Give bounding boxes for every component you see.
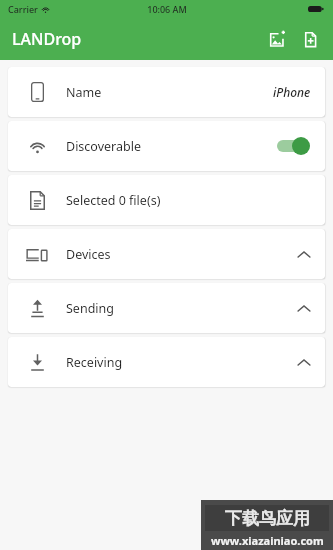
staticText: Name — [66, 84, 102, 101]
button[interactable]: Discoverable — [8, 121, 325, 171]
staticText: www.xiazainiao.com — [211, 533, 324, 548]
button[interactable]: Add file — [293, 22, 327, 56]
staticText: Receiving — [66, 354, 123, 371]
staticText: Discoverable — [66, 138, 141, 155]
staticText: Selected 0 file(s) — [66, 192, 161, 209]
button[interactable]: Receiving — [8, 337, 325, 387]
staticText: Sending — [66, 300, 114, 317]
button[interactable]: Name — [8, 67, 325, 117]
staticText: Carrier — [8, 3, 38, 15]
button[interactable]: Discoverable toggle, on — [275, 136, 311, 156]
button[interactable]: Selected 0 file(s) — [8, 175, 325, 225]
button[interactable]: Add image — [259, 22, 293, 56]
button[interactable]: Devices — [8, 229, 325, 279]
staticText: LANDrop — [12, 28, 82, 50]
staticText: 下载鸟应用 — [225, 508, 310, 529]
staticText: Devices — [66, 246, 111, 263]
staticText: iPhone — [273, 84, 311, 100]
button[interactable]: Sending — [8, 283, 325, 333]
staticText: 10:06 AM — [147, 3, 187, 15]
